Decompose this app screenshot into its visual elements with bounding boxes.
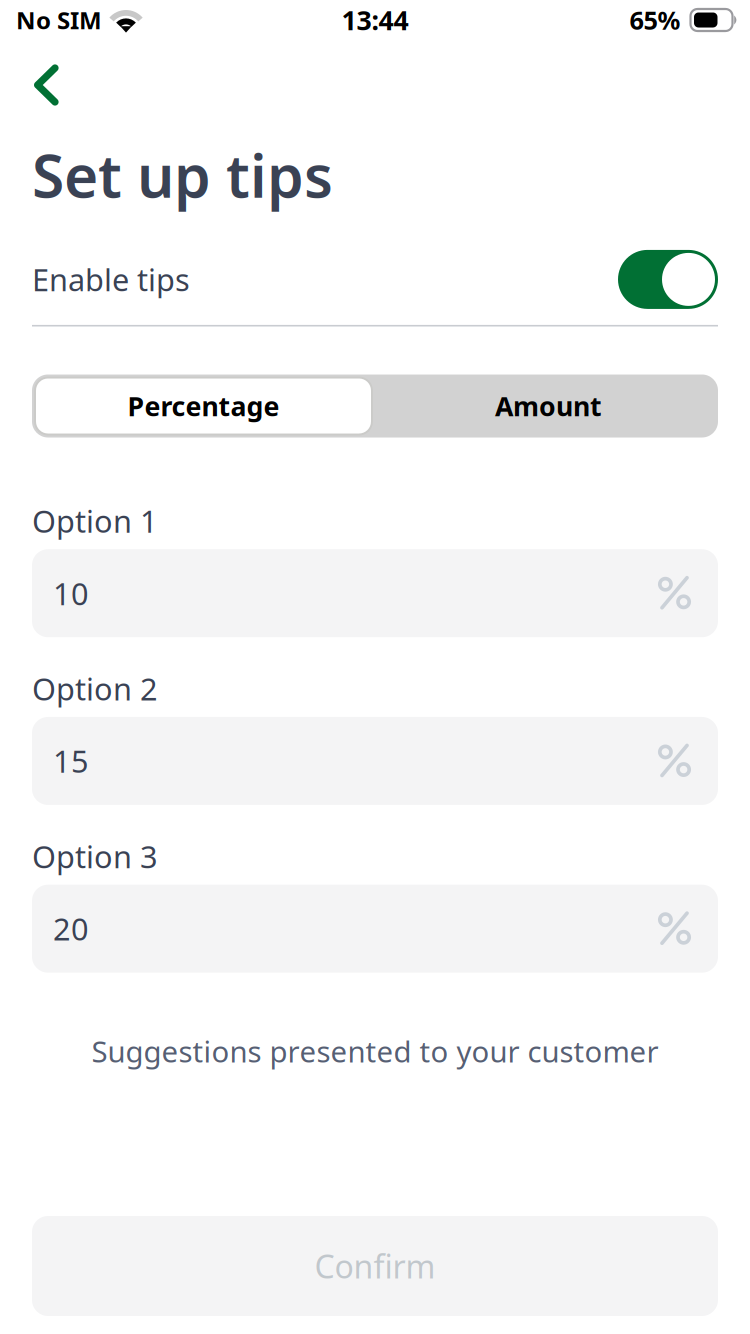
staticText: Amount	[495, 388, 602, 424]
staticText: Confirm	[314, 1245, 435, 1287]
staticText: Option 1	[32, 500, 158, 541]
staticText: 10	[53, 573, 89, 614]
button[interactable]: Back	[0, 40, 85, 113]
staticText: Option 2	[32, 668, 158, 709]
button[interactable]: Enable tips	[618, 250, 718, 309]
staticText: 20	[53, 908, 89, 949]
staticText: 13:44	[341, 2, 408, 38]
button[interactable]: Confirm	[0, 1216, 750, 1334]
button[interactable]: Percentage	[32, 377, 372, 434]
staticText: 15	[53, 741, 89, 781]
staticText: Percentage	[127, 388, 279, 424]
staticText: Suggestions presented to your customer	[91, 1032, 658, 1071]
staticText: No SIM	[16, 4, 102, 36]
staticText: Set up tips	[32, 136, 333, 214]
staticText: 65%	[629, 3, 680, 37]
staticText: Option 3	[32, 836, 158, 877]
staticText: Enable tips	[32, 259, 190, 300]
button[interactable]: Amount	[372, 374, 718, 437]
